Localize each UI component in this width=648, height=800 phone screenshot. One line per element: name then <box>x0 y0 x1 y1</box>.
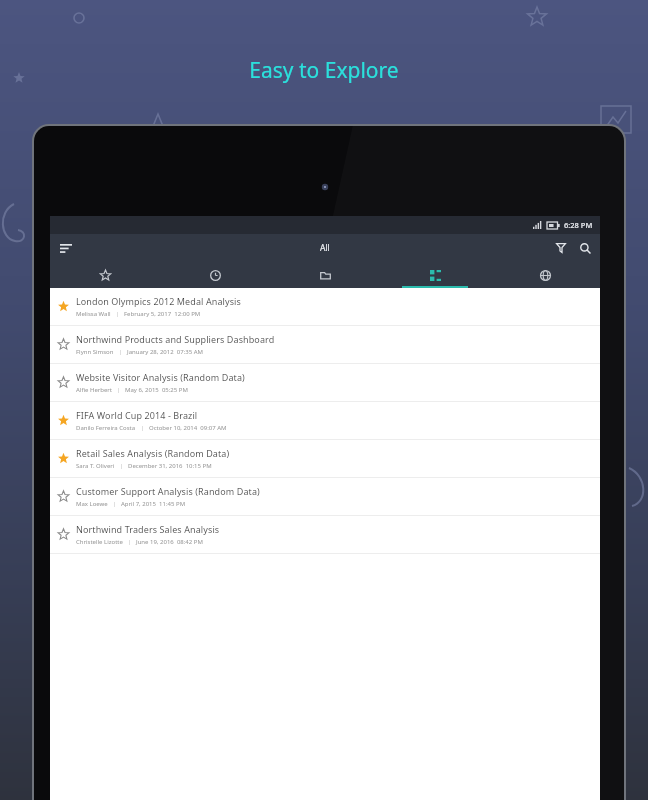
staticText: 6:28 PM <box>564 220 593 230</box>
staticText: February 5, 2017 12:00 PM <box>124 310 201 318</box>
button[interactable]: Customer Support Analysis (Random Data) <box>50 478 600 515</box>
button[interactable]: Recent <box>160 262 270 288</box>
staticText: Max Loewe <box>76 500 108 508</box>
staticText: April 7, 2015 11:45 PM <box>121 500 186 508</box>
staticText: | <box>114 348 127 356</box>
button[interactable]: London Olympics 2012 Medal Analysis <box>50 288 600 325</box>
staticText: Retail Sales Analysis (Random Data) <box>76 447 230 459</box>
button[interactable]: Online <box>490 262 600 288</box>
button[interactable]: Retail Sales Analysis (Random Data) <box>50 440 600 477</box>
button[interactable]: Website Visitor Analysis (Random Data) <box>50 364 600 401</box>
staticText: Flynn Simson <box>76 348 114 356</box>
staticText: Melissa Wall <box>76 310 111 318</box>
staticText: | <box>115 462 128 470</box>
staticText: Danilo Ferreira Costa <box>76 424 136 432</box>
staticText: | <box>112 386 125 394</box>
staticText: | <box>136 424 149 432</box>
staticText: June 19, 2016 08:42 PM <box>136 538 203 546</box>
staticText: London Olympics 2012 Medal Analysis <box>76 295 241 307</box>
staticText: Sara T. Oliveri <box>76 462 115 470</box>
staticText: December 31, 2016 10:15 PM <box>128 462 212 470</box>
button[interactable]: All items <box>380 262 490 288</box>
staticText: Website Visitor Analysis (Random Data) <box>76 371 245 383</box>
button[interactable]: Filter <box>550 237 572 259</box>
staticText: Alfie Herbert <box>76 386 112 394</box>
staticText: All <box>320 242 330 254</box>
staticText: October 10, 2014 09:07 AM <box>149 424 227 432</box>
staticText: | <box>108 500 121 508</box>
staticText: | <box>123 538 136 546</box>
button[interactable]: Menu <box>55 237 77 259</box>
staticText: Northwind Traders Sales Analysis <box>76 523 220 535</box>
button[interactable]: Northwind Products and Suppliers Dashboa… <box>50 326 600 363</box>
staticText: January 28, 2012 07:35 AM <box>127 348 203 356</box>
button[interactable]: Search <box>574 237 596 259</box>
staticText: Easy to Explore <box>0 56 648 85</box>
staticText: Christelle Lizotte <box>76 538 123 546</box>
staticText: | <box>111 310 124 318</box>
button[interactable]: Favorites <box>50 262 160 288</box>
staticText: May 6, 2015 05:25 PM <box>125 386 188 394</box>
button[interactable]: FIFA World Cup 2014 - Brazil <box>50 402 600 439</box>
staticText: Northwind Products and Suppliers Dashboa… <box>76 333 275 345</box>
button[interactable]: Folders <box>270 262 380 288</box>
button[interactable]: Northwind Traders Sales Analysis <box>50 516 600 553</box>
staticText: Customer Support Analysis (Random Data) <box>76 485 260 497</box>
staticText: FIFA World Cup 2014 - Brazil <box>76 409 198 421</box>
